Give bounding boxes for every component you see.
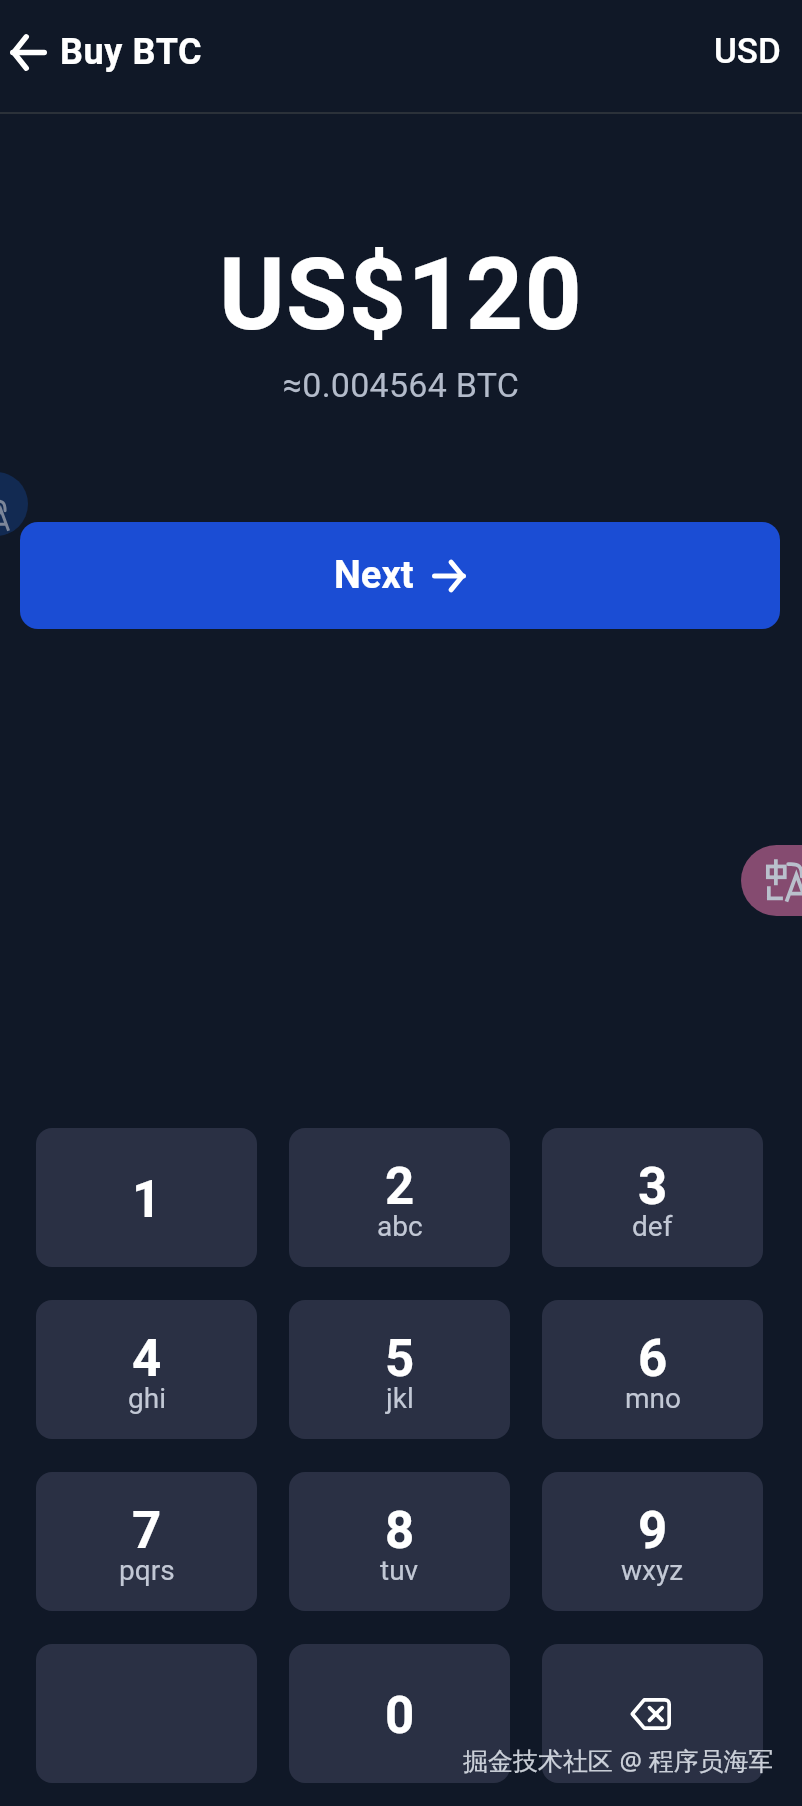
staticText: jkl	[386, 1382, 414, 1415]
button[interactable]: 2	[289, 1128, 510, 1267]
button[interactable]: Backspace	[542, 1644, 763, 1783]
button[interactable]: 1	[36, 1128, 257, 1267]
button[interactable]: USD	[691, 23, 802, 90]
staticText: 2	[385, 1157, 415, 1217]
staticText: 0	[385, 1686, 415, 1746]
other: Back	[10, 35, 47, 70]
staticText: 3	[638, 1157, 668, 1217]
staticText: pqrs	[119, 1554, 175, 1587]
button[interactable]: Next	[20, 522, 780, 629]
staticText: 掘金技术社区 @ 程序员海军	[463, 1743, 774, 1777]
staticText: mno	[625, 1382, 681, 1415]
staticText: Next	[334, 553, 414, 598]
button[interactable]: 9	[542, 1472, 763, 1611]
staticText: ≈0.004564 BTC	[0, 365, 802, 405]
staticText: 9	[638, 1501, 668, 1561]
staticText: def	[632, 1210, 673, 1243]
button[interactable]: 6	[542, 1300, 763, 1439]
staticText: 6	[638, 1329, 668, 1389]
button[interactable]: 4	[36, 1300, 257, 1439]
staticText: 7	[132, 1501, 162, 1561]
staticText: US$120	[0, 236, 802, 353]
staticText: 4	[132, 1329, 162, 1389]
button[interactable]: 8	[289, 1472, 510, 1611]
staticText: Buy BTC	[60, 31, 203, 73]
staticText: tuv	[380, 1554, 419, 1587]
staticText: wxyz	[621, 1554, 684, 1587]
button[interactable]: Back	[0, 23, 211, 89]
staticText: ghi	[128, 1382, 166, 1415]
staticText: 1	[132, 1170, 162, 1230]
staticText: 8	[385, 1501, 415, 1561]
button[interactable]: 0	[289, 1644, 510, 1783]
button[interactable]: Translate page	[741, 845, 802, 916]
staticText: USD	[714, 31, 781, 72]
button[interactable]: 3	[542, 1128, 763, 1267]
button[interactable]: 5	[289, 1300, 510, 1439]
staticText: abc	[377, 1210, 423, 1243]
button[interactable]: Translate	[0, 472, 28, 536]
button[interactable]: 7	[36, 1472, 257, 1611]
staticText: 5	[385, 1329, 415, 1389]
